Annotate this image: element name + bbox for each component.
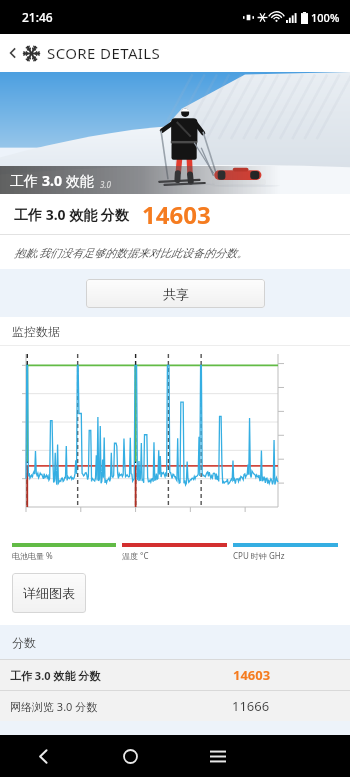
staticText: 3.0	[100, 179, 111, 190]
staticText: 电池电量 %	[12, 550, 53, 561]
button[interactable]: 工作 3.0 效能 分数	[0, 660, 350, 690]
staticText: 温度 °C	[122, 550, 149, 561]
staticText: 14603	[233, 666, 271, 684]
button[interactable]: 详细图表	[12, 573, 86, 613]
button[interactable]: Back	[3, 43, 23, 63]
staticText: 14603	[142, 198, 211, 231]
staticText: 网络浏览 3.0 分数	[10, 699, 98, 714]
staticText: 3.0	[42, 171, 62, 190]
staticText: 抱歉,我们没有足够的数据来对比此设备的分数。	[14, 245, 248, 260]
staticText: 21:46	[22, 9, 53, 25]
staticText: 共享	[163, 286, 189, 302]
staticText: 11666	[232, 697, 270, 715]
staticText: 工作	[10, 171, 42, 190]
staticText: CPU 时钟 GHz	[233, 550, 285, 561]
staticText: 效能	[62, 171, 94, 190]
button[interactable]: 共享	[86, 279, 265, 308]
staticText: 工作 3.0 效能 分数	[10, 668, 101, 683]
staticText: 分数	[12, 635, 36, 650]
button[interactable]: Home	[87, 735, 174, 777]
button[interactable]: Recent apps	[174, 735, 262, 777]
button[interactable]: 网络浏览 3.0 分数	[0, 691, 350, 721]
button[interactable]: Back	[0, 735, 87, 777]
staticText: 详细图表	[23, 585, 75, 601]
staticText: 监控数据	[12, 324, 60, 339]
staticText: 100%	[311, 10, 340, 25]
staticText: 工作 3.0 效能 分数	[14, 205, 129, 224]
staticText: SCORE DETAILS	[47, 43, 161, 63]
